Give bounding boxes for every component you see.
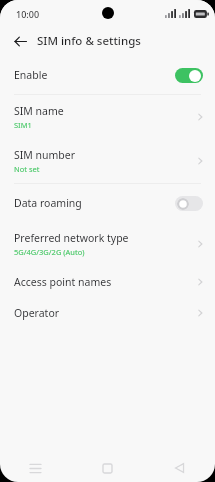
button[interactable]: Recent apps (0, 454, 71, 482)
staticText: Data roaming (14, 196, 175, 210)
button[interactable]: Home (71, 454, 143, 482)
button[interactable]: Back (143, 454, 215, 482)
button[interactable]: Back (8, 29, 32, 53)
button[interactable]: Access point names (0, 266, 215, 297)
button[interactable]: Data roaming (0, 184, 215, 222)
staticText: SIM number (14, 148, 76, 162)
button[interactable]: Preferred network type (0, 222, 215, 266)
staticText: Access point names (14, 275, 112, 289)
staticText: 5G/4G/3G/2G (Auto) (14, 247, 85, 257)
button[interactable]: Enable (0, 56, 215, 94)
staticText: SIM1 (14, 120, 32, 130)
staticText: Not set (14, 164, 40, 174)
staticText: Preferred network type (14, 231, 129, 245)
button[interactable]: SIM name (0, 95, 215, 139)
button[interactable]: Operator (0, 297, 215, 328)
button[interactable]: SIM number (0, 139, 215, 183)
staticText: Operator (14, 306, 60, 320)
staticText: 10:00 (16, 8, 40, 20)
staticText: SIM name (14, 104, 64, 118)
staticText: SIM info & settings (37, 33, 141, 49)
button[interactable]: On (175, 68, 203, 83)
button[interactable]: Off (175, 196, 203, 211)
staticText: Enable (14, 68, 175, 82)
